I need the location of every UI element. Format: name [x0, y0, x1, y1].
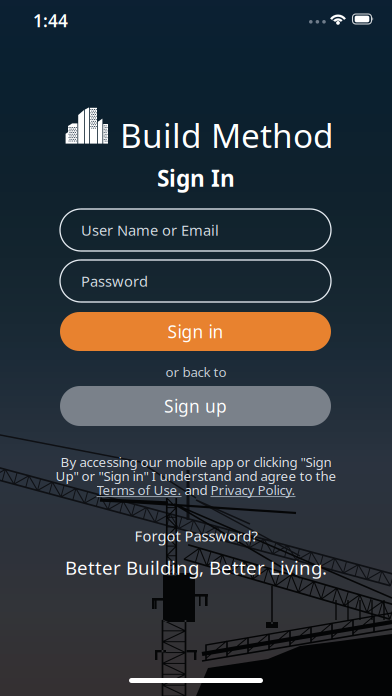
staticText: Sign In [157, 163, 235, 193]
staticText: 1:44 [33, 9, 68, 32]
button[interactable]: User Name or Email [60, 209, 331, 251]
button[interactable]: Password [60, 260, 331, 302]
button[interactable]: Sign in [60, 312, 331, 351]
button[interactable]: Terms of Use. [96, 481, 181, 499]
button[interactable]: Forgot Password? [0, 526, 392, 545]
staticText: or back to [165, 363, 226, 381]
staticText: User Name or Email [81, 220, 219, 240]
staticText: Sign in [167, 320, 223, 343]
staticText: Better Building, Better Living. [65, 555, 327, 580]
staticText: Build Method [120, 113, 334, 157]
staticText: Sign up [164, 394, 227, 417]
staticText: Forgot Password? [134, 526, 257, 545]
staticText: and [184, 481, 207, 499]
staticText: Password [81, 271, 148, 291]
staticText: Privacy Policy. [210, 481, 295, 499]
button[interactable]: Sign up [60, 386, 331, 426]
staticText: By accessing our mobile app or clicking … [60, 453, 331, 471]
button[interactable]: Privacy Policy. [210, 481, 295, 499]
staticText: Up" or "Sign in" I understand and agree … [55, 467, 336, 485]
staticText: Terms of Use. [96, 481, 181, 499]
